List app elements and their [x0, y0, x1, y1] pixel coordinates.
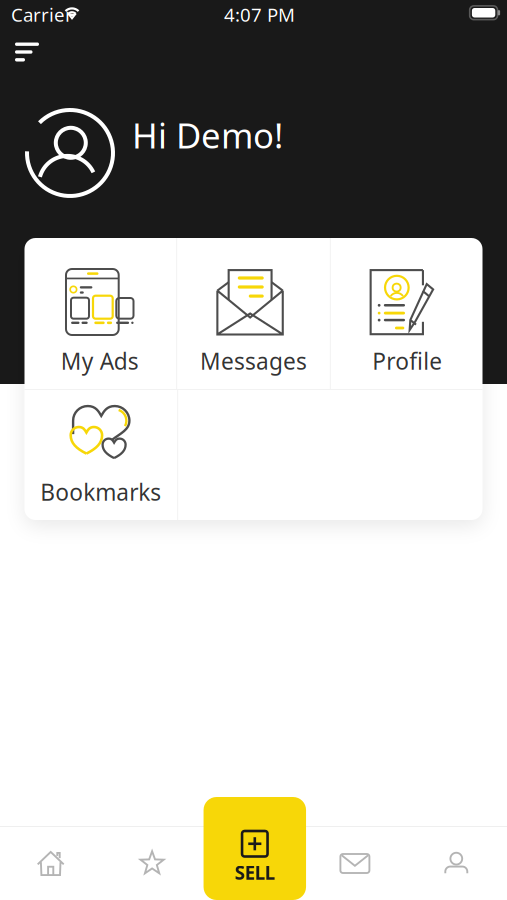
staticText: Hi Demo!	[132, 112, 283, 158]
button[interactable]: Bookmarks	[24, 390, 177, 520]
staticText: Bookmarks	[40, 477, 161, 507]
staticText: SELL	[235, 860, 275, 885]
staticText: Carrier	[11, 2, 73, 27]
staticText: Profile	[372, 346, 442, 376]
button[interactable]: SELL	[202, 797, 305, 900]
button[interactable]: Account	[406, 827, 507, 900]
button[interactable]: Messages	[177, 238, 330, 389]
button[interactable]: My Ads	[23, 238, 176, 389]
button[interactable]: Menu	[15, 34, 61, 70]
button[interactable]: Favourites	[101, 827, 203, 900]
staticText: My Ads	[61, 346, 139, 376]
staticText: Messages	[200, 346, 307, 376]
staticText: 4:07 PM	[224, 2, 295, 27]
button[interactable]: Profile	[331, 238, 483, 389]
button[interactable]: Messages	[304, 827, 406, 900]
button[interactable]: Home	[0, 827, 101, 900]
